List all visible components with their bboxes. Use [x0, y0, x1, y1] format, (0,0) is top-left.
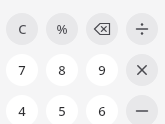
button[interactable]: Backspace	[86, 13, 118, 45]
button[interactable]: 5	[46, 95, 78, 124]
button[interactable]: 6	[86, 95, 118, 124]
staticText: C	[18, 20, 27, 38]
button[interactable]: 7	[6, 54, 38, 86]
button[interactable]: Divide	[126, 13, 158, 45]
staticText: 7	[18, 61, 26, 79]
staticText: 5	[58, 102, 66, 120]
button[interactable]: 4	[6, 95, 38, 124]
button[interactable]: %	[46, 13, 78, 45]
button[interactable]: 9	[86, 54, 118, 86]
staticText: 9	[98, 61, 106, 79]
button[interactable]: Subtract	[126, 95, 158, 124]
staticText: 6	[98, 102, 106, 120]
button[interactable]: Multiply	[126, 54, 158, 86]
staticText: %	[56, 20, 68, 38]
staticText: 4	[18, 102, 26, 120]
button[interactable]: 8	[46, 54, 78, 86]
button[interactable]: C	[6, 13, 38, 45]
staticText: 8	[58, 61, 66, 79]
